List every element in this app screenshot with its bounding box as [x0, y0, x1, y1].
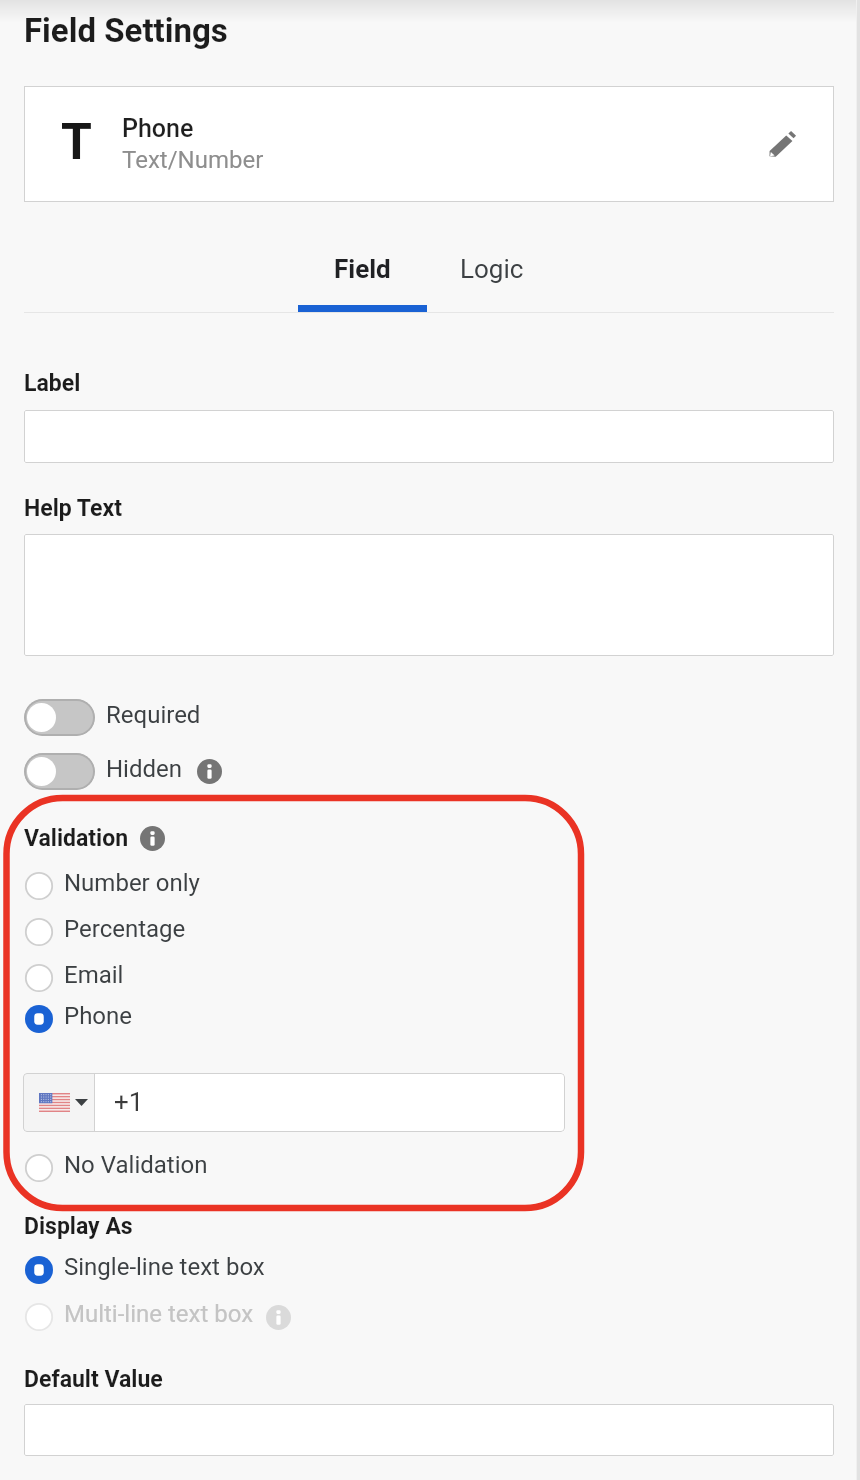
staticText: Display As	[24, 1213, 133, 1240]
staticText: Help Text	[24, 495, 122, 522]
button[interactable]: +1	[95, 1073, 565, 1132]
staticText: Multi-line text box	[64, 1300, 254, 1328]
staticText: Label	[24, 370, 81, 397]
staticText: Validation	[24, 825, 129, 852]
button[interactable]: Field	[298, 232, 427, 313]
button[interactable]	[24, 1404, 834, 1456]
staticText: Number only	[64, 869, 200, 897]
staticText: Single-line text box	[64, 1253, 265, 1281]
staticText: Phone	[64, 1002, 133, 1030]
button[interactable]: Email	[24, 962, 124, 994]
button[interactable]: Percentage	[24, 916, 186, 948]
button[interactable]: Phone	[24, 1003, 133, 1035]
button[interactable]: Single-line text box	[24, 1254, 265, 1286]
button[interactable]: T	[24, 86, 834, 202]
staticText: Default Value	[24, 1366, 163, 1393]
staticText: Hidden	[106, 755, 183, 783]
button[interactable]: Multi-line text box	[24, 1301, 291, 1333]
staticText: Email	[64, 961, 124, 989]
staticText: No Validation	[64, 1151, 208, 1179]
staticText: Field Settings	[24, 11, 228, 50]
staticText: Text/Number	[122, 146, 264, 174]
button[interactable]: No Validation	[24, 1152, 208, 1184]
staticText: Logic	[460, 254, 524, 284]
button[interactable]: Hidden	[24, 753, 222, 790]
staticText: Field	[334, 254, 391, 284]
staticText: Percentage	[64, 915, 186, 943]
staticText: Required	[106, 701, 201, 729]
button[interactable]	[24, 410, 834, 463]
button[interactable]: Select country code	[23, 1073, 94, 1132]
staticText: Phone	[122, 114, 194, 143]
button[interactable]	[24, 534, 834, 656]
button[interactable]: Logic	[427, 232, 556, 313]
button[interactable]: Edit field	[749, 112, 813, 176]
button[interactable]: Number only	[24, 870, 200, 902]
staticText: T	[61, 113, 92, 172]
button[interactable]: Required	[24, 699, 201, 736]
staticText: +1	[114, 1087, 144, 1117]
